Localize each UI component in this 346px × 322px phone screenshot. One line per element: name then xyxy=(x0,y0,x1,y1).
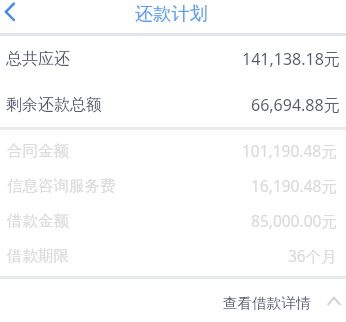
staticText: 信息咨询服务费 xyxy=(7,176,116,196)
button[interactable]: 借款金额 xyxy=(7,203,337,238)
staticText: 66,694.88元 xyxy=(251,94,340,116)
button[interactable]: Back xyxy=(0,0,26,28)
button[interactable]: 查看借款详情 xyxy=(0,279,346,322)
staticText: 总共应还 xyxy=(6,49,70,69)
staticText: 还款计划 xyxy=(135,2,208,25)
staticText: 85,000.00元 xyxy=(251,210,337,231)
staticText: 101,190.48元 xyxy=(242,140,337,161)
staticText: 16,190.48元 xyxy=(251,175,337,196)
staticText: 36个月 xyxy=(288,245,337,266)
staticText: 合同金额 xyxy=(7,141,69,161)
other: Collapse loan details xyxy=(327,294,341,308)
staticText: 查看借款详情 xyxy=(223,294,311,312)
staticText: 借款期限 xyxy=(7,246,69,266)
staticText: 141,138.18元 xyxy=(242,48,340,70)
button[interactable]: 借款期限 xyxy=(7,238,337,273)
button[interactable]: 剩余还款总额 xyxy=(6,82,340,127)
staticText: 剩余还款总额 xyxy=(6,95,102,115)
button[interactable]: 信息咨询服务费 xyxy=(7,168,337,203)
button[interactable]: 合同金额 xyxy=(7,133,337,168)
button[interactable]: 总共应还 xyxy=(6,36,340,82)
staticText: 借款金额 xyxy=(7,211,69,231)
